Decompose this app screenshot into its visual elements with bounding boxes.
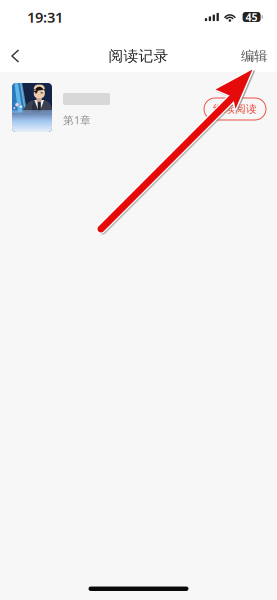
staticText: 第1章 — [63, 113, 91, 127]
staticText: 编辑 — [241, 48, 267, 64]
staticText: 19:31 — [27, 7, 63, 27]
staticText: 阅读记录 — [108, 47, 168, 65]
button[interactable]: Back — [11, 34, 41, 72]
staticText: 45 — [246, 10, 258, 24]
button[interactable]: 编辑 — [241, 34, 267, 72]
button[interactable]: 继续阅读 — [204, 98, 266, 120]
staticText: 继续阅读 — [213, 102, 257, 115]
